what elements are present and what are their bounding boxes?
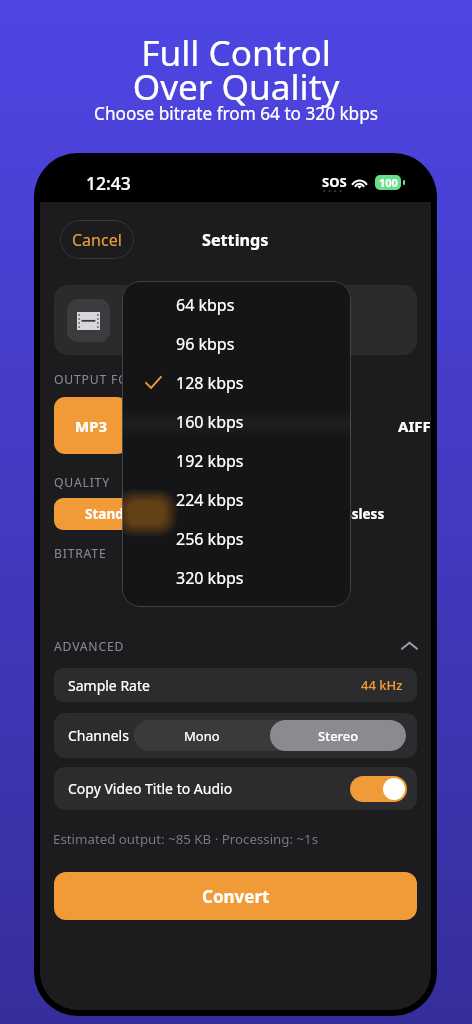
- staticText: 100: [379, 175, 398, 190]
- staticText: 96 kbps: [176, 333, 235, 355]
- button[interactable]: Lossless: [296, 498, 417, 530]
- button[interactable]: Copy Video Title to Audio: [54, 767, 417, 810]
- button[interactable]: Stereo: [270, 720, 406, 751]
- button[interactable]: 160 kbps: [122, 402, 351, 441]
- staticText: WAV: [236, 416, 270, 436]
- button[interactable]: ADVANCED: [54, 637, 417, 655]
- button[interactable]: 128 kbps: [122, 363, 351, 402]
- staticText: SOS: [322, 173, 347, 191]
- staticText: 64 kbps: [176, 294, 235, 316]
- staticText: 256 kbps: [176, 528, 244, 550]
- staticText: Stereo: [318, 727, 359, 745]
- staticText: QUALITY: [54, 474, 110, 491]
- staticText: BITRATE: [54, 545, 107, 562]
- button[interactable]: Cancel: [60, 220, 134, 259]
- staticText: ADVANCED: [54, 638, 125, 655]
- button[interactable]: 320 kbps: [122, 558, 351, 597]
- staticText: Choose bitrate from 64 to 320 kbps: [0, 102, 472, 125]
- button[interactable]: 192 kbps: [122, 441, 351, 480]
- button[interactable]: 96 kbps: [122, 324, 351, 363]
- staticText: 128 kbps: [176, 372, 244, 394]
- button[interactable]: Sample Rate: [54, 668, 417, 702]
- staticText: Convert: [202, 885, 270, 908]
- staticText: High: [221, 505, 253, 523]
- staticText: Standard: [85, 505, 147, 523]
- button[interactable]: Standard: [54, 498, 177, 530]
- button[interactable]: [54, 285, 417, 355]
- button[interactable]: Mono: [134, 720, 270, 751]
- staticText: Copy Video Title to Audio: [68, 779, 233, 798]
- staticText: Sample Rate: [68, 676, 150, 695]
- staticText: Estimated output: ~85 KB · Processing: ~…: [53, 830, 319, 848]
- staticText: M4A: [155, 416, 189, 436]
- staticText: MP3: [75, 416, 108, 436]
- staticText: 192 kbps: [176, 450, 244, 472]
- other: Copy Video Title to Audio toggle: [350, 776, 407, 802]
- button[interactable]: Convert: [54, 872, 417, 920]
- staticText: Settings: [202, 229, 269, 251]
- staticText: 160 kbps: [176, 411, 244, 433]
- button[interactable]: M4A: [135, 397, 209, 454]
- staticText: 12:43: [86, 171, 131, 195]
- staticText: 320 kbps: [176, 567, 244, 589]
- staticText: Lossless: [329, 505, 385, 523]
- staticText: Mono: [184, 727, 220, 745]
- button[interactable]: WAV: [216, 397, 290, 454]
- staticText: Full Control Over Quality: [0, 28, 472, 111]
- button[interactable]: MP3: [54, 397, 128, 454]
- button[interactable]: 224 kbps: [122, 480, 351, 519]
- staticText: 44 kHz: [361, 676, 403, 694]
- staticText: OUTPUT FORMAT: [54, 371, 165, 388]
- button[interactable]: High: [190, 498, 283, 530]
- button[interactable]: OGG: [296, 397, 370, 454]
- button[interactable]: 64 kbps: [122, 285, 351, 324]
- button[interactable]: 256 kbps: [122, 519, 351, 558]
- staticText: 224 kbps: [176, 489, 244, 511]
- staticText: Channels: [68, 726, 129, 745]
- button[interactable]: AIFF: [377, 397, 431, 454]
- staticText: Cancel: [72, 229, 122, 251]
- staticText: AIFF: [398, 416, 431, 436]
